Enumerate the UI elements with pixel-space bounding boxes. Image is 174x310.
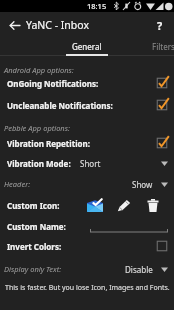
staticText: Display only Text: xyxy=(4,264,62,274)
staticText: YaNC - Inbox xyxy=(26,18,89,32)
staticText: Invert Colors: xyxy=(7,241,62,252)
button[interactable]: Vibration Repetition: xyxy=(0,133,174,153)
staticText: Vibration Mode: xyxy=(7,158,71,169)
button[interactable]: Invert Colors: xyxy=(0,236,174,256)
staticText: OnGoing Notifications: xyxy=(7,78,99,89)
staticText: Android App options: xyxy=(4,65,74,75)
staticText: This is faster. But you lose Icon, Image… xyxy=(5,283,170,293)
button[interactable]: Vibration Mode: xyxy=(0,153,174,173)
staticText: General xyxy=(72,41,102,52)
button[interactable]: General xyxy=(66,37,108,56)
button[interactable]: Delete icon xyxy=(144,196,162,214)
button[interactable]: Uncleanable Notifications: xyxy=(0,95,174,115)
button[interactable]: OnGoing Notifications: xyxy=(0,73,174,93)
button[interactable]: Filters xyxy=(152,37,174,56)
staticText: Custom Name: xyxy=(7,221,66,232)
staticText: Vibration Repetition: xyxy=(7,138,91,149)
staticText: Uncleanable Notifications: xyxy=(7,100,113,111)
button[interactable]: Edit icon xyxy=(115,196,133,214)
button[interactable]: Display only Text: xyxy=(0,259,174,279)
button[interactable]: Header: xyxy=(0,174,174,194)
staticText: Show xyxy=(132,179,153,190)
button[interactable]: Back xyxy=(2,13,26,37)
staticText: Custom Icon: xyxy=(7,200,60,211)
button[interactable]: App icon xyxy=(86,196,104,214)
staticText: Filters xyxy=(152,41,174,52)
button[interactable]: Custom Name: xyxy=(0,216,174,236)
staticText: Pebble App options: xyxy=(4,123,70,133)
staticText: 18:15 xyxy=(87,1,107,11)
staticText: ? xyxy=(157,18,163,33)
staticText: Disable xyxy=(125,264,153,275)
staticText: Header: xyxy=(4,179,31,189)
button[interactable]: Help xyxy=(149,14,171,36)
staticText: Short xyxy=(80,158,101,169)
